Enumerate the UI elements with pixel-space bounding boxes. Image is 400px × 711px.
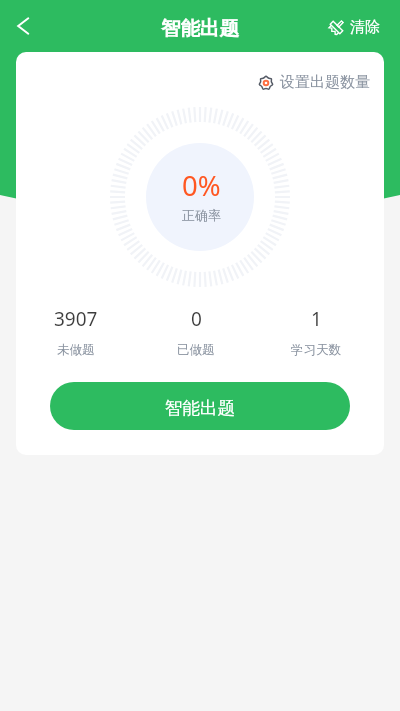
button[interactable]: 清除 [320,12,400,43]
staticText: 智能出题 [161,16,239,41]
button[interactable]: 智能出题 [50,382,350,430]
button[interactable]: 设置出题数量 [250,70,384,95]
staticText: 清除 [350,18,380,37]
staticText: 0% [182,167,221,204]
staticText: 设置出题数量 [280,73,370,92]
staticText: 1 [311,306,322,332]
staticText: 3907 [54,306,98,332]
staticText: 未做题 [57,342,95,358]
staticText: 智能出题 [165,397,235,419]
button[interactable]: Back [3,6,43,46]
staticText: 正确率 [182,207,221,223]
staticText: 0 [191,306,202,332]
staticText: 学习天数 [291,342,341,358]
staticText: 已做题 [177,342,215,358]
